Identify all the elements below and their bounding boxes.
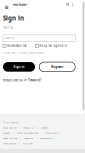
staticText: Sign in <box>13 65 24 69</box>
staticText: Store Locator | Site Map <box>3 142 32 145</box>
button[interactable]: Careers | Terms and Conditions | Privacy… <box>3 131 59 134</box>
staticText: User ID <box>3 26 13 29</box>
staticText: or <box>24 78 27 82</box>
staticText: Sign in <box>3 14 24 22</box>
button[interactable]: Remember me <box>3 44 27 48</box>
staticText: Password? <box>28 78 41 82</box>
staticText: Register <box>51 65 63 69</box>
staticText: Forgot User ID <box>3 78 23 82</box>
button[interactable]: Store Locator | Site Map <box>3 142 32 145</box>
button[interactable]: Keep me signed in <box>35 44 67 48</box>
staticText: Careers | Terms and Conditions | Privacy… <box>3 131 59 134</box>
button[interactable]: Register <box>39 62 75 72</box>
staticText: Remember me <box>7 44 27 48</box>
staticText: © 2017 Verizon <box>3 121 18 124</box>
button[interactable]: About Verizon | Contact Us | Support <box>3 126 48 129</box>
staticText: About Our Ads | Advertise | Accessibilit… <box>3 137 53 140</box>
staticText: ✓ <box>26 3 29 6</box>
button[interactable]: Password? <box>28 78 41 82</box>
staticText: User ID <box>5 36 15 40</box>
button[interactable]: Sign in <box>3 62 35 72</box>
staticText: verizon <box>13 2 26 7</box>
staticText: Keep me signed in <box>39 44 67 48</box>
staticText: About Verizon | Contact Us | Support <box>3 126 48 129</box>
button[interactable]: More <box>70 0 75 9</box>
button[interactable]: verizon <box>8 0 29 9</box>
button[interactable]: Search <box>65 0 70 9</box>
button[interactable]: About Our Ads | Advertise | Accessibilit… <box>3 137 53 140</box>
button[interactable]: Forgot User ID <box>3 78 23 82</box>
staticText: Do not check if using a shared computer <box>3 51 44 54</box>
button[interactable]: Menu <box>0 0 8 9</box>
